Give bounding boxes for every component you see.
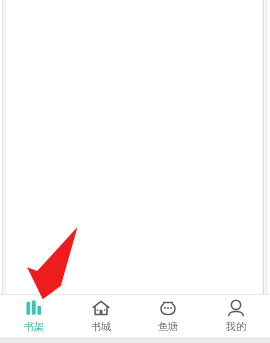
staticText: 我的 [226, 320, 246, 333]
button[interactable]: 我的 [202, 295, 270, 337]
staticText: 书架 [24, 320, 44, 333]
button[interactable]: 鱼塘 [134, 295, 202, 337]
staticText: 鱼塘 [158, 320, 178, 333]
staticText: 书城 [91, 320, 111, 333]
button[interactable]: 书城 [67, 295, 134, 337]
button[interactable]: 书架 [0, 295, 67, 337]
